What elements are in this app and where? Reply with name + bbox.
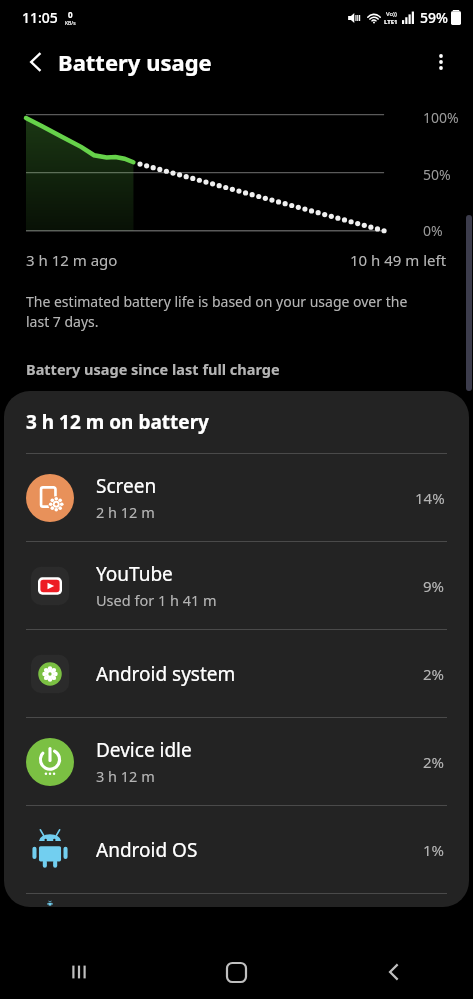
button[interactable]: Android OS (4, 806, 469, 893)
staticText: 1% (423, 840, 445, 860)
staticText: 50% (423, 165, 451, 184)
button[interactable]: More options (419, 40, 463, 84)
staticText: 9% (423, 576, 445, 596)
staticText: Android system (96, 661, 236, 687)
button[interactable]: Screen (4, 454, 469, 541)
staticText: Vo)) (386, 10, 397, 18)
button[interactable]: Android system (4, 630, 469, 717)
staticText: 59% (420, 8, 448, 27)
staticText: Screen (96, 473, 157, 499)
button[interactable]: YouTube (4, 542, 469, 629)
staticText: Battery usage (58, 47, 212, 77)
staticText: Device idle (96, 737, 192, 763)
staticText: LTE1 (384, 18, 398, 26)
staticText: 100% (423, 108, 459, 127)
staticText: 2% (423, 664, 445, 684)
staticText: The estimated battery life is based on y… (26, 292, 408, 331)
staticText: 3 h 12 m on battery (26, 409, 209, 435)
button[interactable]: Back (315, 945, 473, 999)
button[interactable]: Back (14, 40, 58, 84)
staticText: YouTube (96, 561, 173, 587)
staticText: 3 h 12 m (96, 766, 155, 786)
staticText: Battery usage since last full charge (26, 359, 280, 379)
staticText: 2 h 12 m (96, 502, 155, 522)
staticText: Used for 1 h 41 m (96, 590, 217, 610)
staticText: KB/s (65, 20, 76, 27)
staticText: Android OS (96, 837, 198, 863)
staticText: 10 h 49 m left (350, 250, 447, 270)
staticText: 14% (415, 488, 445, 508)
staticText: 0 (68, 9, 73, 20)
staticText: 11:05 (22, 8, 58, 27)
button[interactable]: Home (157, 945, 315, 999)
button[interactable]: Recent apps (0, 945, 157, 999)
button[interactable]: Device idle (4, 718, 469, 805)
staticText: 2% (423, 752, 445, 772)
staticText: 3 h 12 m ago (26, 250, 118, 270)
staticText: 0% (423, 221, 443, 240)
